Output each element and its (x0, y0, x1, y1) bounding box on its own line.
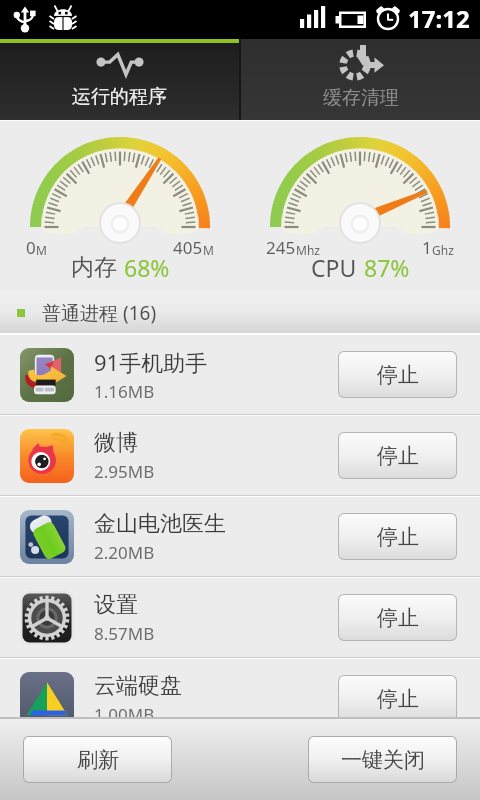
staticText: 68% (124, 252, 170, 283)
staticText: 云端硬盘 (94, 672, 182, 700)
staticText: 2.20MB (94, 541, 155, 564)
button[interactable]: 缓存清理 (241, 39, 480, 120)
staticText: 17:12 (408, 2, 470, 35)
staticText: 停止 (377, 362, 419, 388)
staticText: 金山电池医生 (94, 510, 226, 538)
staticText: 停止 (377, 605, 419, 631)
staticText: 405 (173, 236, 203, 259)
button[interactable]: 运行的程序 (0, 39, 239, 120)
staticText: 一键关闭 (341, 747, 425, 773)
staticText: 刷新 (77, 747, 119, 773)
button[interactable]: 停止 (339, 676, 456, 721)
staticText: Ghz (432, 242, 454, 258)
staticText: 245 (266, 236, 296, 259)
staticText: Mhz (296, 242, 320, 258)
staticText: 内存 (71, 253, 117, 282)
button[interactable]: 设置 (0, 578, 480, 657)
button[interactable]: 一键关闭 (309, 737, 456, 782)
staticText: 设置 (94, 591, 138, 619)
button[interactable]: 停止 (339, 595, 456, 640)
button[interactable]: 停止 (339, 352, 456, 397)
staticText: M (36, 242, 47, 258)
button[interactable]: 微博 (0, 416, 480, 495)
staticText: 2.95MB (94, 460, 155, 483)
staticText: 0 (26, 236, 36, 259)
staticText: 91手机助手 (94, 347, 208, 377)
staticText: 停止 (377, 524, 419, 550)
staticText: 缓存清理 (323, 86, 399, 110)
button[interactable]: 金山电池医生 (0, 497, 480, 576)
button[interactable]: 停止 (339, 433, 456, 478)
staticText: 8.57MB (94, 622, 155, 645)
staticText: 微博 (94, 429, 138, 457)
button[interactable]: 刷新 (24, 737, 171, 782)
staticText: 运行的程序 (72, 85, 167, 109)
staticText: 普通进程 (16) (42, 300, 157, 326)
staticText: 87% (364, 252, 410, 283)
staticText: M (203, 242, 214, 258)
staticText: 1.16MB (94, 380, 155, 403)
button[interactable]: 云端硬盘 (0, 659, 480, 738)
staticText: 1 (422, 236, 432, 259)
button[interactable]: 停止 (339, 514, 456, 559)
staticText: CPU (311, 252, 357, 283)
staticText: 停止 (377, 443, 419, 469)
staticText: 1.00MB (94, 703, 155, 726)
button[interactable]: 91手机助手 (0, 335, 480, 414)
staticText: 停止 (377, 686, 419, 712)
